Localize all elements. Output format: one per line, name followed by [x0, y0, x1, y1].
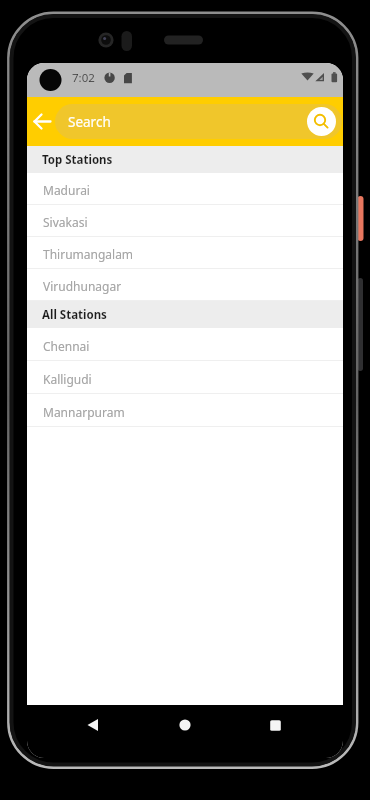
button[interactable]: Sivakasi [27, 205, 343, 237]
staticText: 7:02 [72, 70, 95, 86]
button[interactable]: Kalligudi [27, 361, 343, 394]
staticText: Mannarpuram [43, 404, 125, 420]
staticText: Madurai [43, 182, 90, 198]
staticText: Thirumangalam [43, 246, 134, 262]
staticText: Sivakasi [43, 214, 88, 230]
staticText: Top Stations [42, 152, 113, 168]
staticText: Kalligudi [43, 371, 92, 387]
staticText: Search [68, 113, 111, 131]
button[interactable] [261, 711, 289, 739]
staticText: Chennai [43, 338, 90, 354]
button[interactable]: Mannarpuram [27, 394, 343, 427]
button[interactable]: Search [55, 104, 342, 139]
button[interactable] [30, 109, 55, 134]
staticText: Virudhunagar [43, 278, 122, 294]
button[interactable]: Madurai [27, 173, 343, 205]
button[interactable]: Chennai [27, 328, 343, 361]
button[interactable]: Virudhunagar [27, 269, 343, 301]
button[interactable] [78, 711, 106, 739]
staticText: All Stations [42, 307, 107, 323]
button[interactable] [171, 711, 199, 739]
button[interactable]: Thirumangalam [27, 237, 343, 269]
button[interactable] [307, 107, 336, 136]
